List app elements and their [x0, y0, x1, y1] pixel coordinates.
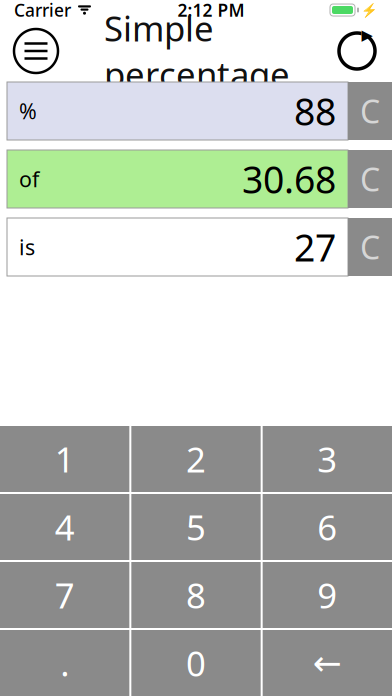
- button[interactable]: 3: [263, 426, 392, 492]
- button[interactable]: Menu: [12, 27, 60, 75]
- staticText: C: [360, 226, 380, 268]
- staticText: 8: [186, 572, 206, 618]
- staticText: 27: [294, 222, 336, 272]
- button[interactable]: 1: [0, 426, 129, 492]
- staticText: Carrier: [14, 0, 71, 21]
- staticText: 6: [317, 504, 337, 550]
- button[interactable]: ←: [263, 630, 392, 696]
- staticText: 7: [55, 572, 75, 618]
- staticText: 4: [55, 504, 75, 550]
- staticText: C: [360, 90, 380, 132]
- button[interactable]: C: [348, 218, 392, 276]
- button[interactable]: 2: [131, 426, 261, 492]
- staticText: [71, 0, 77, 25]
- staticText: 0: [186, 640, 206, 686]
- staticText: is: [19, 233, 35, 261]
- staticText: %: [19, 97, 37, 125]
- staticText: C: [360, 158, 380, 200]
- staticText: ⚡: [361, 2, 378, 18]
- staticText: 3: [317, 436, 337, 482]
- button[interactable]: 6: [263, 494, 392, 560]
- button[interactable]: 5: [131, 494, 261, 560]
- staticText: ▶: [361, 27, 372, 43]
- staticText: 30.68: [242, 154, 336, 204]
- button[interactable]: 9: [263, 562, 392, 628]
- staticText: .: [60, 640, 69, 686]
- staticText: 5: [186, 504, 206, 550]
- staticText: 1: [55, 436, 75, 482]
- staticText: ←: [313, 643, 342, 683]
- button[interactable]: 4: [0, 494, 129, 560]
- button[interactable]: 8: [131, 562, 261, 628]
- button[interactable]: 0: [131, 630, 261, 696]
- staticText: Simple percentage: [104, 5, 290, 97]
- button[interactable]: 7: [0, 562, 129, 628]
- staticText: 2: [186, 436, 206, 482]
- staticText: 9: [317, 572, 337, 618]
- button[interactable]: C: [348, 150, 392, 208]
- staticText: 2:12 PM: [177, 0, 244, 21]
- staticText: of: [19, 165, 39, 193]
- button[interactable]: .: [0, 630, 129, 696]
- button[interactable]: C: [348, 82, 392, 140]
- button[interactable]: Reset: [334, 28, 380, 74]
- staticText: 88: [294, 86, 336, 136]
